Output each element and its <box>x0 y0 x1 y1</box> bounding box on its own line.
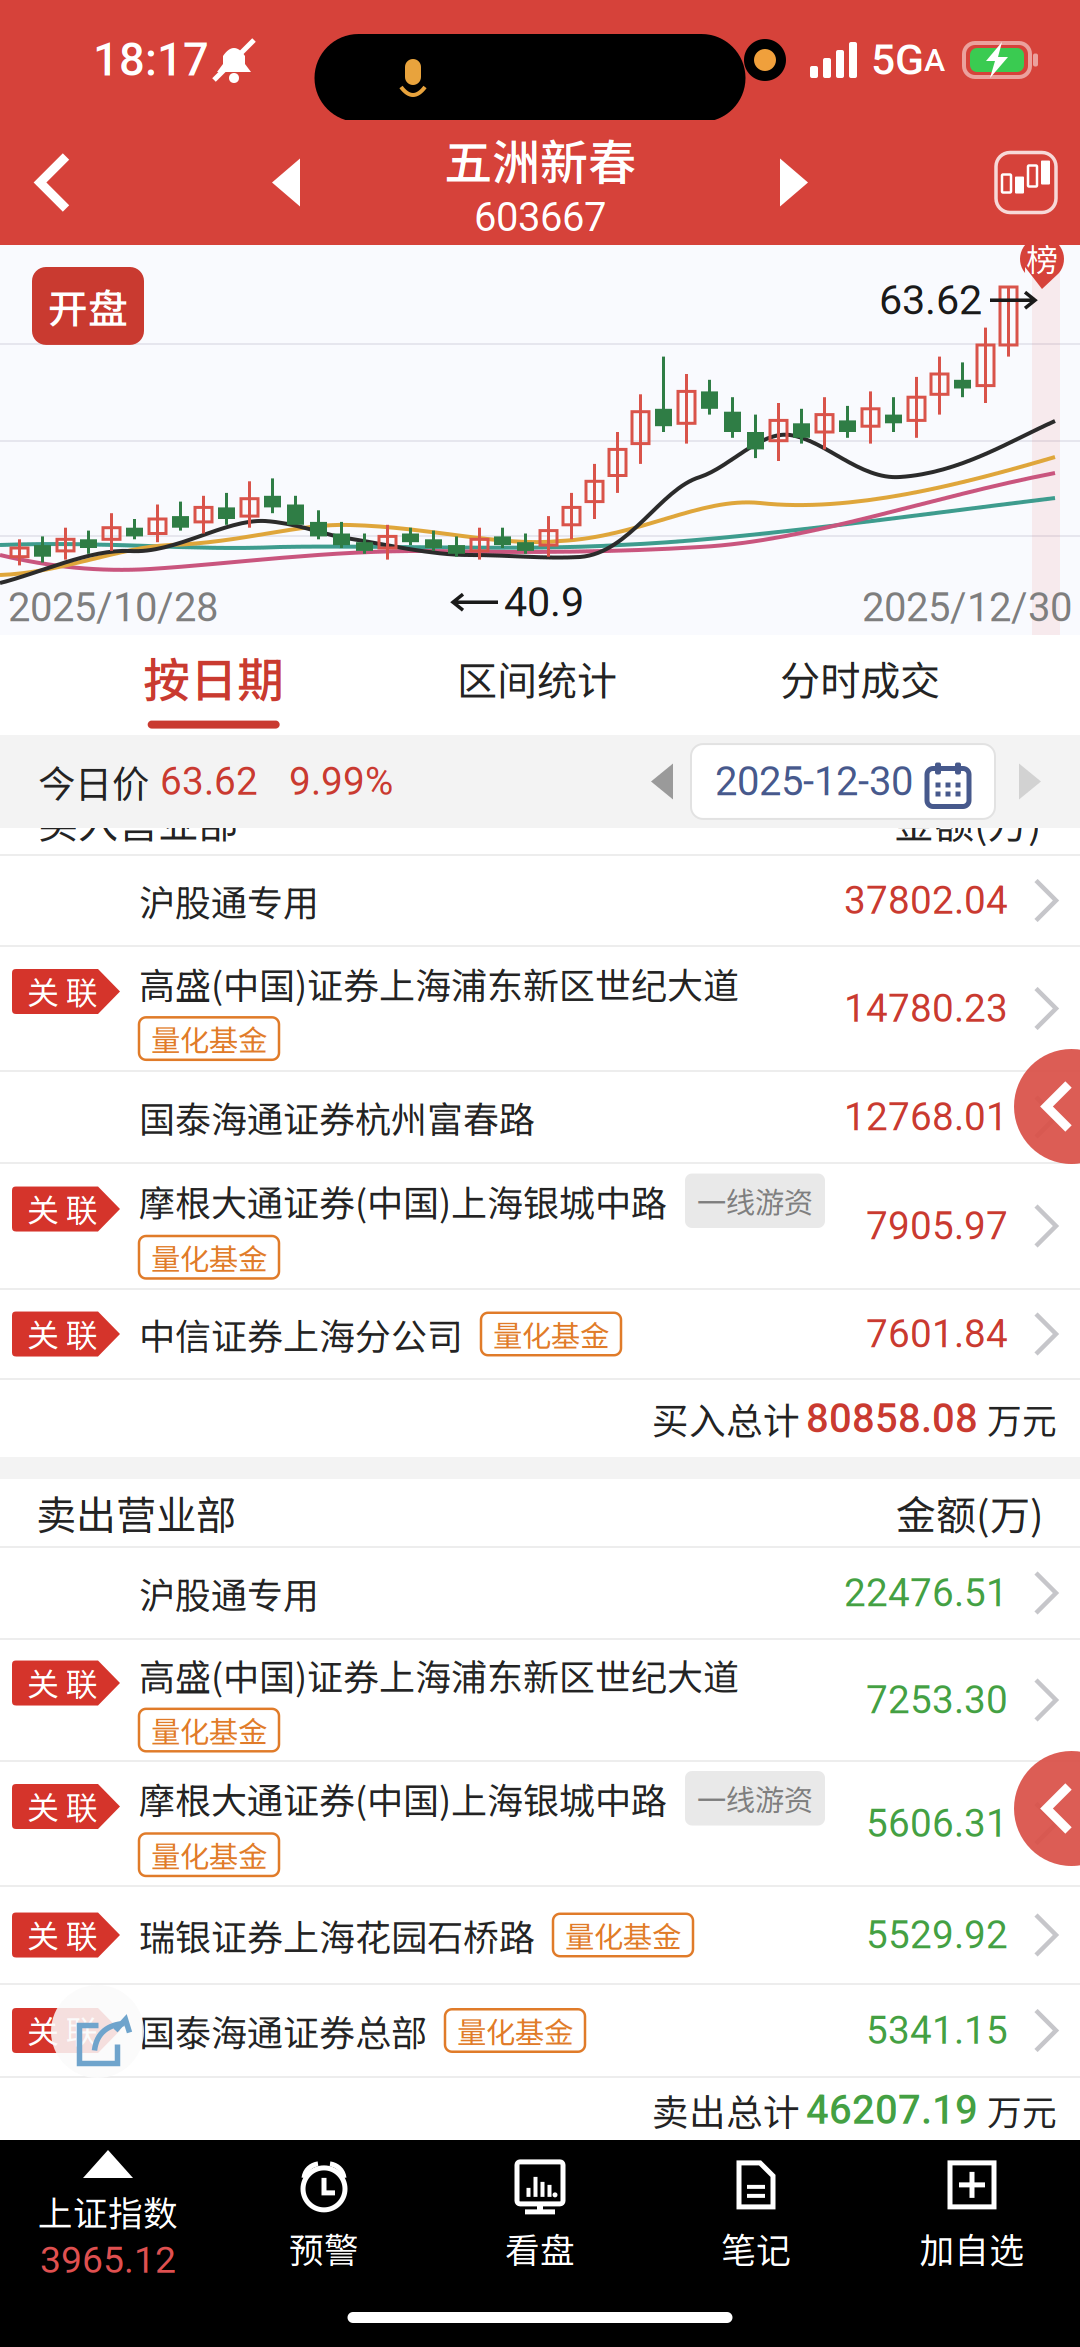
staticText: 63.62 <box>160 759 258 804</box>
staticText: 关 联 <box>27 2006 98 2053</box>
staticText: 46207.19 <box>806 2087 978 2133</box>
staticText: 一线游资 <box>697 1179 813 1222</box>
button[interactable]: Previous page <box>965 1751 1080 1866</box>
staticText: 22476.51 <box>844 1570 1008 1616</box>
staticText: 开盘 <box>48 277 128 335</box>
staticText: 分时成交 <box>780 649 940 707</box>
staticText: 卖出营业部 <box>36 1483 236 1541</box>
staticText: 7601.84 <box>866 1311 1008 1357</box>
staticText: 5G <box>871 35 924 85</box>
staticText: 关 联 <box>27 967 98 1014</box>
staticText: 榜 <box>1026 235 1058 281</box>
staticText: 五洲新春 <box>444 124 636 194</box>
staticText: 关 联 <box>27 1310 98 1356</box>
staticText: 63.62 <box>879 276 982 324</box>
button[interactable]: 关 联 <box>0 1762 1080 1885</box>
button[interactable]: Previous page <box>965 1049 1080 1164</box>
staticText: 加自选 <box>919 2223 1024 2273</box>
staticText: 国泰海通证券总部 <box>139 2004 427 2056</box>
staticText: 预警 <box>289 2223 359 2273</box>
staticText: 5606.31 <box>866 1801 1008 1846</box>
staticText: 沪股通专用 <box>139 874 319 926</box>
staticText: 40.9 <box>504 578 584 626</box>
button[interactable]: 关 联 <box>0 947 1080 1070</box>
staticText: 关 联 <box>27 1911 98 1957</box>
staticText: 卖出总计 <box>652 2083 800 2137</box>
staticText: 高盛(中国)证券上海浦东新区世纪大道 <box>139 1649 739 1701</box>
button[interactable]: 看盘 <box>432 2159 648 2273</box>
staticText: 7905.97 <box>866 1203 1008 1249</box>
button[interactable]: Previous stock <box>250 136 322 228</box>
button[interactable]: 沪股通专用 <box>0 856 1080 945</box>
staticText: 7253.30 <box>866 1677 1008 1723</box>
staticText: 笔记 <box>721 2223 791 2273</box>
staticText: 中信证券上海分公司 <box>139 1308 463 1360</box>
staticText: 量化基金 <box>151 1017 267 1060</box>
staticText: 上证指数 <box>38 2186 178 2236</box>
staticText: 量化基金 <box>151 1833 267 1876</box>
staticText: 2025/12/30 <box>862 584 1072 631</box>
staticText: 按日期 <box>143 643 284 711</box>
staticText: 沪股通专用 <box>139 1567 319 1619</box>
button[interactable]: Back <box>10 136 98 228</box>
staticText: 5529.92 <box>866 1912 1008 1958</box>
staticText: 603667 <box>474 194 606 241</box>
button[interactable]: 沪股通专用 <box>0 1548 1080 1638</box>
staticText: 买入营业部 <box>38 792 238 850</box>
staticText: 14780.23 <box>844 986 1008 1031</box>
staticText: 量化基金 <box>151 1236 267 1278</box>
staticText: 量化基金 <box>457 2009 573 2052</box>
staticText: 9.99% <box>289 759 393 804</box>
button[interactable]: 关 联 <box>0 1887 1080 1983</box>
staticText: 关 联 <box>27 1782 98 1829</box>
button[interactable]: 加自选 <box>864 2159 1080 2273</box>
button[interactable]: 关 联 <box>0 1640 1080 1760</box>
button[interactable]: 区间统计 <box>375 635 699 735</box>
button[interactable]: 关 联 <box>0 1164 1080 1288</box>
button[interactable]: 上证指数 <box>0 2150 216 2282</box>
staticText: 量化基金 <box>565 1914 681 1956</box>
staticText: 看盘 <box>505 2223 575 2273</box>
staticText: 买入总计 <box>652 1392 800 1445</box>
staticText: 摩根大通证券(中国)上海银城中路 <box>139 1175 667 1227</box>
staticText: 37802.04 <box>844 878 1008 923</box>
staticText: 5341.15 <box>866 2008 1008 2053</box>
staticText: 关 联 <box>27 1185 98 1231</box>
button[interactable]: Next stock <box>758 136 830 228</box>
button[interactable]: Previous day <box>633 751 691 811</box>
button[interactable]: 预警 <box>216 2159 432 2273</box>
staticText: 一线游资 <box>697 1777 813 1819</box>
button[interactable]: 2025-12-30 <box>691 744 995 819</box>
staticText: 国泰海通证券杭州富春路 <box>139 1091 535 1143</box>
button[interactable]: 关 联 <box>0 1290 1080 1378</box>
staticText: 2025/10/28 <box>8 584 218 631</box>
staticText: 关 联 <box>27 1659 98 1705</box>
staticText: 量化基金 <box>151 1709 267 1751</box>
button[interactable]: 笔记 <box>648 2159 864 2273</box>
button[interactable]: K line chart <box>982 152 1070 212</box>
staticText: 高盛(中国)证券上海浦东新区世纪大道 <box>139 957 739 1009</box>
staticText: 万元 <box>987 2085 1057 2135</box>
staticText: 金额(万) <box>894 792 1042 850</box>
staticText: 量化基金 <box>493 1313 609 1355</box>
staticText: 3965.12 <box>40 2238 176 2282</box>
button[interactable]: 分时成交 <box>699 635 1022 735</box>
button[interactable]: 国泰海通证券杭州富春路 <box>0 1072 1080 1162</box>
staticText: 12768.01 <box>844 1094 1008 1140</box>
staticText: 金额(万) <box>896 1483 1044 1541</box>
staticText: 瑞银证券上海花园石桥路 <box>139 1909 535 1961</box>
staticText: 18:17 <box>93 33 209 86</box>
staticText: 2025-12-30 <box>715 758 913 805</box>
button[interactable]: 按日期 <box>52 635 375 735</box>
staticText: 80858.08 <box>806 1395 978 1442</box>
staticText: 摩根大通证券(中国)上海银城中路 <box>139 1772 667 1824</box>
staticText: A <box>924 41 945 79</box>
staticText: 万元 <box>987 1393 1057 1444</box>
staticText: 区间统计 <box>457 649 617 707</box>
button[interactable]: 关 联 <box>0 1985 1080 2076</box>
staticText: 今日价 <box>38 754 149 809</box>
button[interactable]: Share <box>0 1985 93 2078</box>
